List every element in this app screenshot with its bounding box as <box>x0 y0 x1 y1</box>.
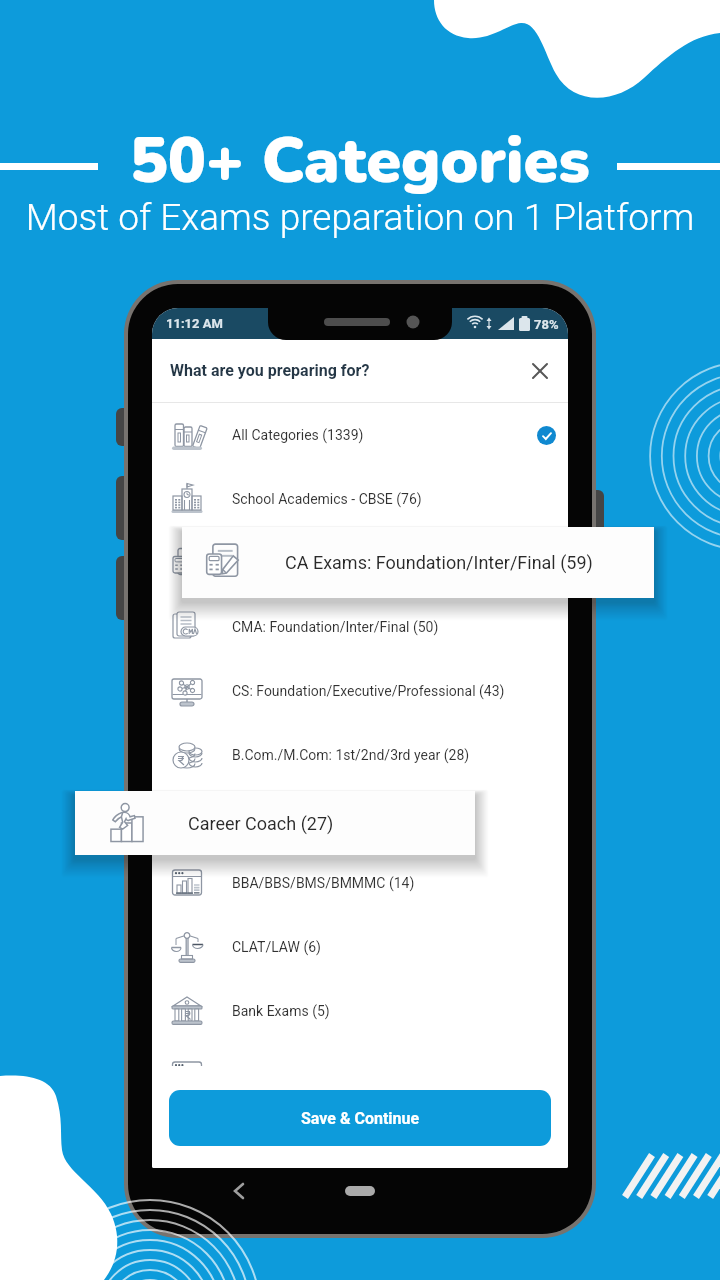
staticText: 11:12 AM <box>166 316 223 331</box>
staticText: Career Coach (27) <box>232 811 346 827</box>
button[interactable]: Career Coach (27) <box>152 787 568 851</box>
button[interactable]: CLAT/LAW (6) <box>152 915 568 979</box>
staticText: CMA: Foundation/Inter/Final (50) <box>232 619 439 635</box>
staticText: 50+ Categories <box>0 118 720 204</box>
staticText: Save & Continue <box>301 1109 420 1128</box>
button[interactable]: Career Coach (27) <box>75 791 475 855</box>
staticText: Bank Exams (5) <box>232 1003 330 1019</box>
staticText: What are you preparing for? <box>170 361 370 380</box>
button[interactable]: CA Exams: Foundation/Inter/Final (59) <box>152 531 568 595</box>
staticText: BBA/BBS/BMS/BMMMC (14) <box>232 875 415 891</box>
staticText: 78% <box>534 317 559 332</box>
staticText: B.Com./M.Com: 1st/2nd/3rd year (28) <box>232 747 470 763</box>
button[interactable]: School Academics - CBSE (76) <box>152 467 568 531</box>
staticText: Career Coach (27) <box>188 813 334 834</box>
button[interactable]: Close <box>522 353 558 389</box>
button[interactable]: CMA: Foundation/Inter/Final (50) <box>152 595 568 659</box>
staticText: CA Exams: Foundation/Inter/Final (59) <box>285 552 593 573</box>
staticText: Most of Exams preparation on 1 Platform <box>0 196 720 239</box>
staticText: CA Exams: Foundation/Inter/Final (59) <box>232 555 472 571</box>
button[interactable]: All Categories (1339) <box>152 403 568 467</box>
button[interactable]: Save & Continue <box>169 1090 551 1146</box>
button[interactable]: BBA/BBS/BMS/BMMMC (14) <box>152 851 568 915</box>
staticText: CLAT/LAW (6) <box>232 939 321 955</box>
button[interactable]: Bank Exams (5) <box>152 979 568 1043</box>
staticText: CS: Foundation/Executive/Professional (4… <box>232 683 505 699</box>
staticText: All Categories (1339) <box>232 427 364 443</box>
staticText: School Academics - CBSE (76) <box>232 491 422 507</box>
button[interactable]: B.Com./M.Com: 1st/2nd/3rd year (28) <box>152 723 568 787</box>
button[interactable]: CS: Foundation/Executive/Professional (4… <box>152 659 568 723</box>
button[interactable]: CA Exams: Foundation/Inter/Final (59) <box>182 527 654 598</box>
